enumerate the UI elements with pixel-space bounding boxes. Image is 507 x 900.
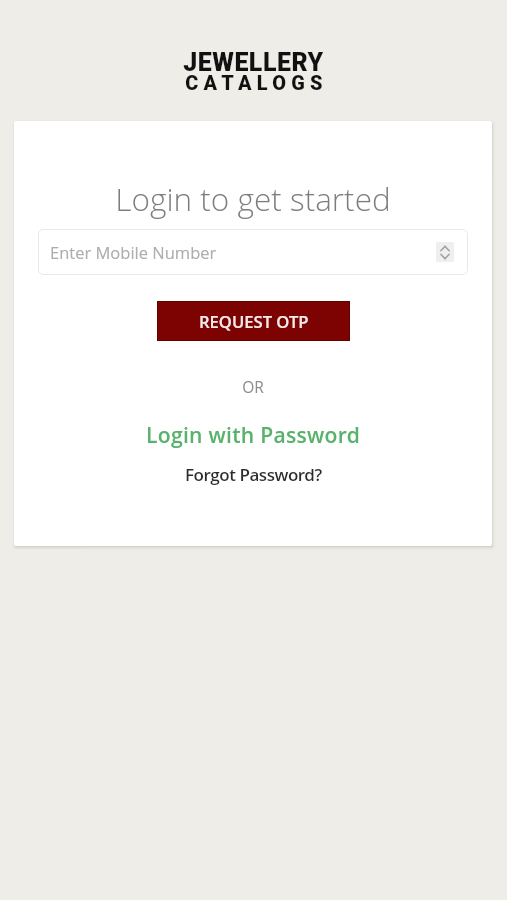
staticText: JEWELLERY [0,48,507,77]
staticText: Enter Mobile Number [50,241,217,263]
staticText: OR [14,376,492,397]
staticText: Login to get started [14,177,492,220]
staticText: REQUEST OTP [199,310,309,333]
button[interactable]: REQUEST OTP [157,301,350,341]
button[interactable]: Login with Password [146,420,361,449]
staticText: Forgot Password? [185,463,322,486]
staticText: CATALOGS [3,72,507,95]
button[interactable]: Increase or decrease number [436,242,454,262]
button[interactable]: Forgot Password? [185,463,322,486]
button[interactable]: Enter Mobile Number [38,229,468,275]
staticText: Login with Password [146,420,361,449]
